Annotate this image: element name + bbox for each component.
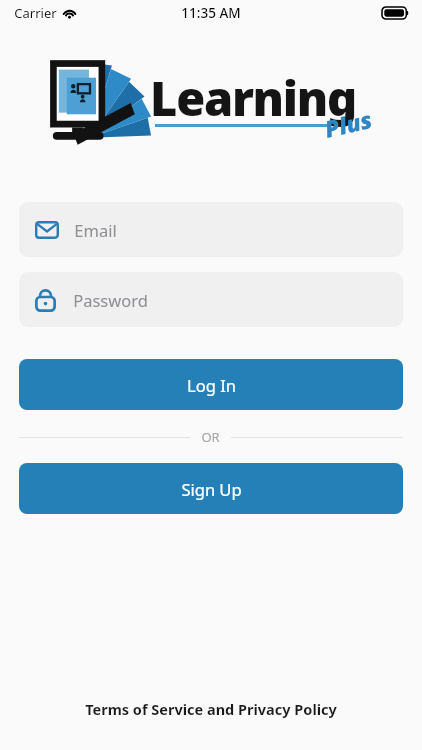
button[interactable]: Terms of Service and Privacy Policy (0, 692, 422, 726)
button[interactable]: Sign Up (19, 463, 403, 514)
staticText: Email (74, 219, 117, 241)
button[interactable]: Log In (19, 359, 403, 410)
staticText: Learning (150, 66, 356, 130)
staticText: Terms of Service and Privacy Policy (85, 699, 337, 719)
button[interactable]: Password (19, 272, 403, 327)
staticText: Password (73, 289, 148, 311)
other: Password (35, 287, 56, 312)
staticText: Sign Up (181, 478, 242, 500)
button[interactable]: Email (19, 202, 403, 257)
staticText: OR (201, 428, 220, 446)
staticText: Plus (321, 103, 375, 144)
staticText: Log In (187, 374, 236, 396)
staticText: 11:35 AM (181, 4, 241, 22)
staticText: Carrier (14, 4, 57, 22)
other: Email (35, 221, 59, 239)
